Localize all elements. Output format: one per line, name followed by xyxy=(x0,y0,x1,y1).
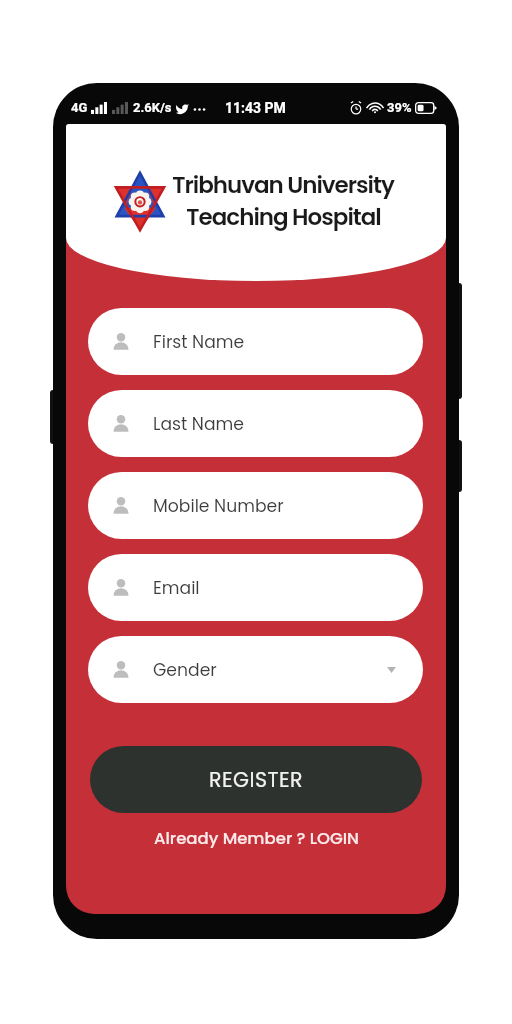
staticText: Tribhuvan University xyxy=(172,169,394,201)
button[interactable]: Gender xyxy=(88,636,423,703)
button[interactable]: Mobile Number xyxy=(88,472,423,539)
staticText: Mobile Number xyxy=(153,494,284,518)
staticText: 39% xyxy=(387,100,412,115)
button[interactable]: First Name xyxy=(88,308,423,375)
staticText: Last Name xyxy=(153,412,244,436)
staticText: REGISTER xyxy=(209,765,304,794)
button[interactable]: Email xyxy=(88,554,423,621)
staticText: Teaching Hospital xyxy=(186,201,381,233)
button[interactable]: Last Name xyxy=(88,390,423,457)
staticText: 11:43 PM xyxy=(225,100,286,116)
button[interactable]: REGISTER xyxy=(90,746,422,813)
staticText: First Name xyxy=(153,330,245,354)
staticText: Gender xyxy=(153,658,217,682)
staticText: 4G xyxy=(71,100,88,115)
button[interactable]: Already Member ? LOGIN xyxy=(66,827,446,850)
staticText: 2.6K/s xyxy=(133,100,172,115)
staticText: Email xyxy=(153,576,200,600)
staticText: Already Member ? LOGIN xyxy=(154,827,359,850)
